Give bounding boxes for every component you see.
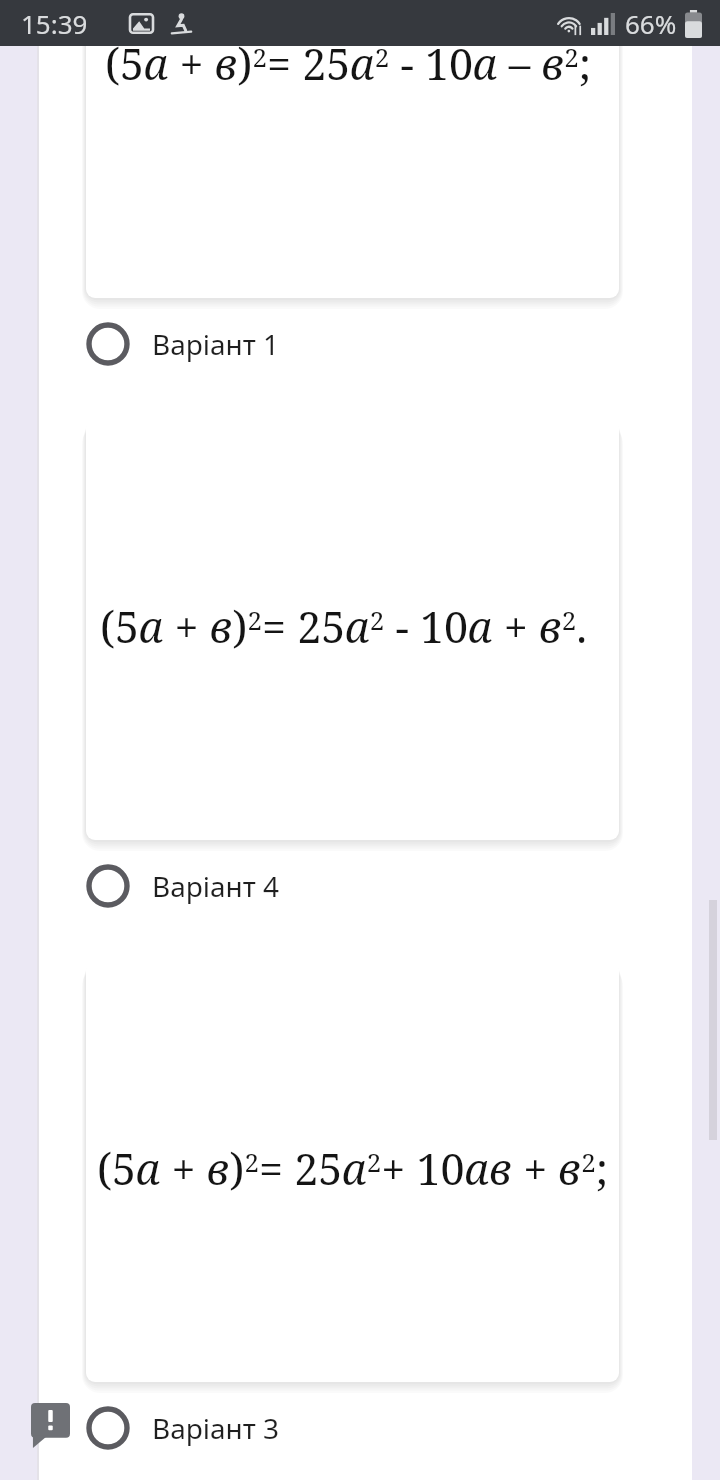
staticText: (5а + в)2= 25а2 - 10а – в2; (105, 34, 592, 93)
button[interactable]: Варіант 4 (86, 855, 516, 917)
button[interactable]: (5а + в)2= 25а2+ 10ав + в2; (86, 961, 619, 1382)
staticText: (5а + в)2= 25а2 - 10а + в2. (100, 597, 588, 656)
staticText: Варіант 3 (152, 1409, 280, 1447)
staticText: Варіант 1 (152, 325, 280, 363)
button[interactable]: (5а + в)2= 25а2 - 10а + в2. (86, 419, 619, 840)
button[interactable]: Варіант 1 (86, 313, 516, 375)
staticText: 66% (625, 6, 677, 41)
button[interactable]: (5а + в)2= 25а2 - 10а – в2; (86, 0, 619, 298)
staticText: Варіант 4 (152, 867, 280, 905)
button[interactable]: Варіант 3 (86, 1397, 516, 1459)
button[interactable]: Report a problem (31, 1403, 70, 1448)
staticText: (5а + в)2= 25а2+ 10ав + в2; (97, 1139, 608, 1198)
staticText: 15:39 (21, 6, 88, 41)
